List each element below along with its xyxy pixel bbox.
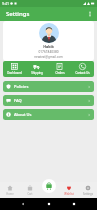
staticText: Shipping: [31, 71, 43, 75]
staticText: Contact Us: [75, 71, 90, 75]
staticText: Settings: [6, 10, 30, 18]
staticText: Home: [6, 192, 14, 196]
button[interactable]: Settings: [78, 182, 97, 198]
staticText: Settings: [83, 192, 93, 196]
button[interactable]: Profile photo: [39, 23, 59, 43]
staticText: Orders: [55, 71, 65, 75]
button[interactable]: FAQ: [3, 95, 94, 106]
button[interactable]: Home: [0, 182, 20, 198]
button[interactable]: Orders: [48, 61, 71, 77]
staticText: Habib: [43, 44, 54, 49]
other: Recents: [72, 202, 76, 206]
staticText: Policies: [14, 84, 29, 89]
button[interactable]: More options: [83, 7, 97, 21]
button[interactable]: Policies: [3, 81, 94, 92]
other: Back: [21, 202, 25, 206]
staticText: newtest@gmail.com: [34, 55, 63, 59]
staticText: FAQ: [14, 98, 22, 103]
staticText: About Us: [14, 112, 32, 117]
staticText: 01761840380: [38, 50, 59, 54]
staticText: 9:41: [2, 1, 9, 6]
button[interactable]: Cart: [20, 182, 40, 198]
button[interactable]: About Us: [3, 109, 94, 120]
staticText: Wishlist: [64, 192, 74, 196]
button[interactable]: Contact Us: [71, 61, 94, 77]
button[interactable]: Dashboard: [3, 61, 25, 77]
button[interactable]: Wishlist: [59, 182, 78, 198]
other: Home: [47, 202, 51, 206]
staticText: Cart: [27, 192, 33, 196]
button[interactable]: Shipping: [25, 61, 48, 77]
staticText: Dashboard: [7, 71, 22, 75]
button[interactable]: Shop: [42, 179, 56, 193]
